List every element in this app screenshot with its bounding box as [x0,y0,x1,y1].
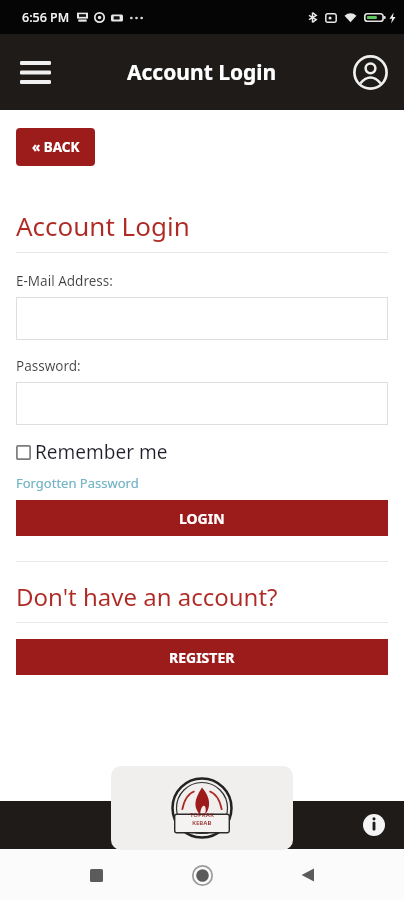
staticText: TOPRAK [190,811,214,819]
button[interactable]: Back [286,853,330,897]
staticText: Remember me [35,439,168,465]
staticText: Password: [16,357,81,375]
staticText: Don't have an account? [16,580,278,613]
button[interactable]: LOGIN [16,500,388,536]
staticText: « BACK [32,138,80,156]
button[interactable]: Forgotten Password [16,474,139,492]
button[interactable]: Toprak Kebab logo [111,766,293,850]
staticText: 6:56 PM [22,9,70,26]
staticText: Forgotten Password [16,474,139,492]
button[interactable]: Account [346,48,394,96]
staticText: LOGIN [179,509,225,528]
button[interactable]: Remember me [16,439,168,465]
staticText: E-Mail Address: [16,272,113,290]
button[interactable]: Recent apps [74,853,118,897]
staticText: KEBAB [192,819,212,827]
button[interactable]: Open navigation menu [8,45,62,99]
button[interactable]: REGISTER [16,639,388,675]
staticText: REGISTER [169,648,235,667]
button[interactable]: « BACK [16,128,95,166]
button[interactable]: Information [356,807,392,843]
button[interactable] [16,297,388,340]
staticText: Account Login [16,208,190,243]
button[interactable] [16,382,388,425]
button[interactable]: Home [180,853,224,897]
staticText: Account Login [127,58,277,87]
